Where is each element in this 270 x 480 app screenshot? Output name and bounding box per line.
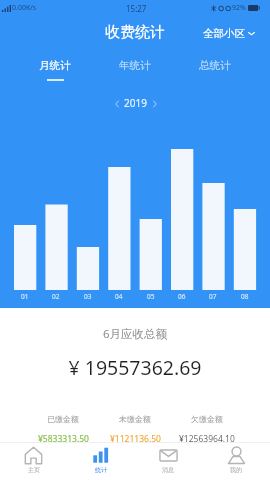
- staticText: 已缴金额: [47, 414, 79, 424]
- button[interactable]: 消息: [134, 442, 202, 480]
- staticText: 统计: [95, 466, 107, 474]
- button[interactable]: Previous year: [110, 97, 123, 110]
- staticText: ¥5833313.50: [38, 433, 89, 445]
- button[interactable]: 总统计: [185, 58, 245, 84]
- button[interactable]: 未缴金额: [99, 414, 171, 445]
- button[interactable]: 统计: [67, 442, 134, 480]
- staticText: 未缴金额: [119, 414, 151, 424]
- staticText: 总统计: [199, 59, 231, 72]
- staticText: 我的: [230, 466, 242, 474]
- staticText: ¥12563964.10: [179, 433, 235, 445]
- staticText: 15:27: [126, 3, 147, 14]
- staticText: 05: [147, 292, 155, 301]
- staticText: 月统计: [39, 59, 71, 72]
- staticText: 92%: [232, 3, 246, 13]
- staticText: 0.00K/s: [12, 3, 37, 13]
- button[interactable]: 年统计: [105, 58, 165, 84]
- staticText: 6月应收总额: [0, 326, 270, 342]
- staticText: 收费统计: [105, 23, 165, 42]
- staticText: 01: [21, 292, 29, 301]
- button[interactable]: 欠缴金额: [171, 414, 243, 445]
- staticText: 消息: [162, 466, 174, 474]
- staticText: 02: [52, 292, 60, 301]
- staticText: 06: [178, 292, 186, 301]
- button[interactable]: Next year: [148, 97, 161, 110]
- button[interactable]: 全部小区: [203, 27, 255, 40]
- staticText: 07: [209, 292, 217, 301]
- staticText: 欠缴金额: [191, 414, 223, 424]
- staticText: 03: [84, 292, 92, 301]
- staticText: 04: [115, 292, 123, 301]
- staticText: ¥ 19557362.69: [0, 354, 270, 381]
- staticText: 08: [241, 292, 249, 301]
- staticText: 主页: [28, 466, 40, 474]
- staticText: 2019: [124, 96, 147, 110]
- staticText: 年统计: [119, 59, 151, 72]
- staticText: 全部小区: [203, 27, 245, 40]
- button[interactable]: 已缴金额: [27, 414, 99, 445]
- button[interactable]: 主页: [0, 442, 67, 480]
- button[interactable]: 我的: [202, 442, 270, 480]
- staticText: ¥1121136.50: [110, 433, 161, 445]
- button[interactable]: 月统计: [25, 58, 85, 84]
